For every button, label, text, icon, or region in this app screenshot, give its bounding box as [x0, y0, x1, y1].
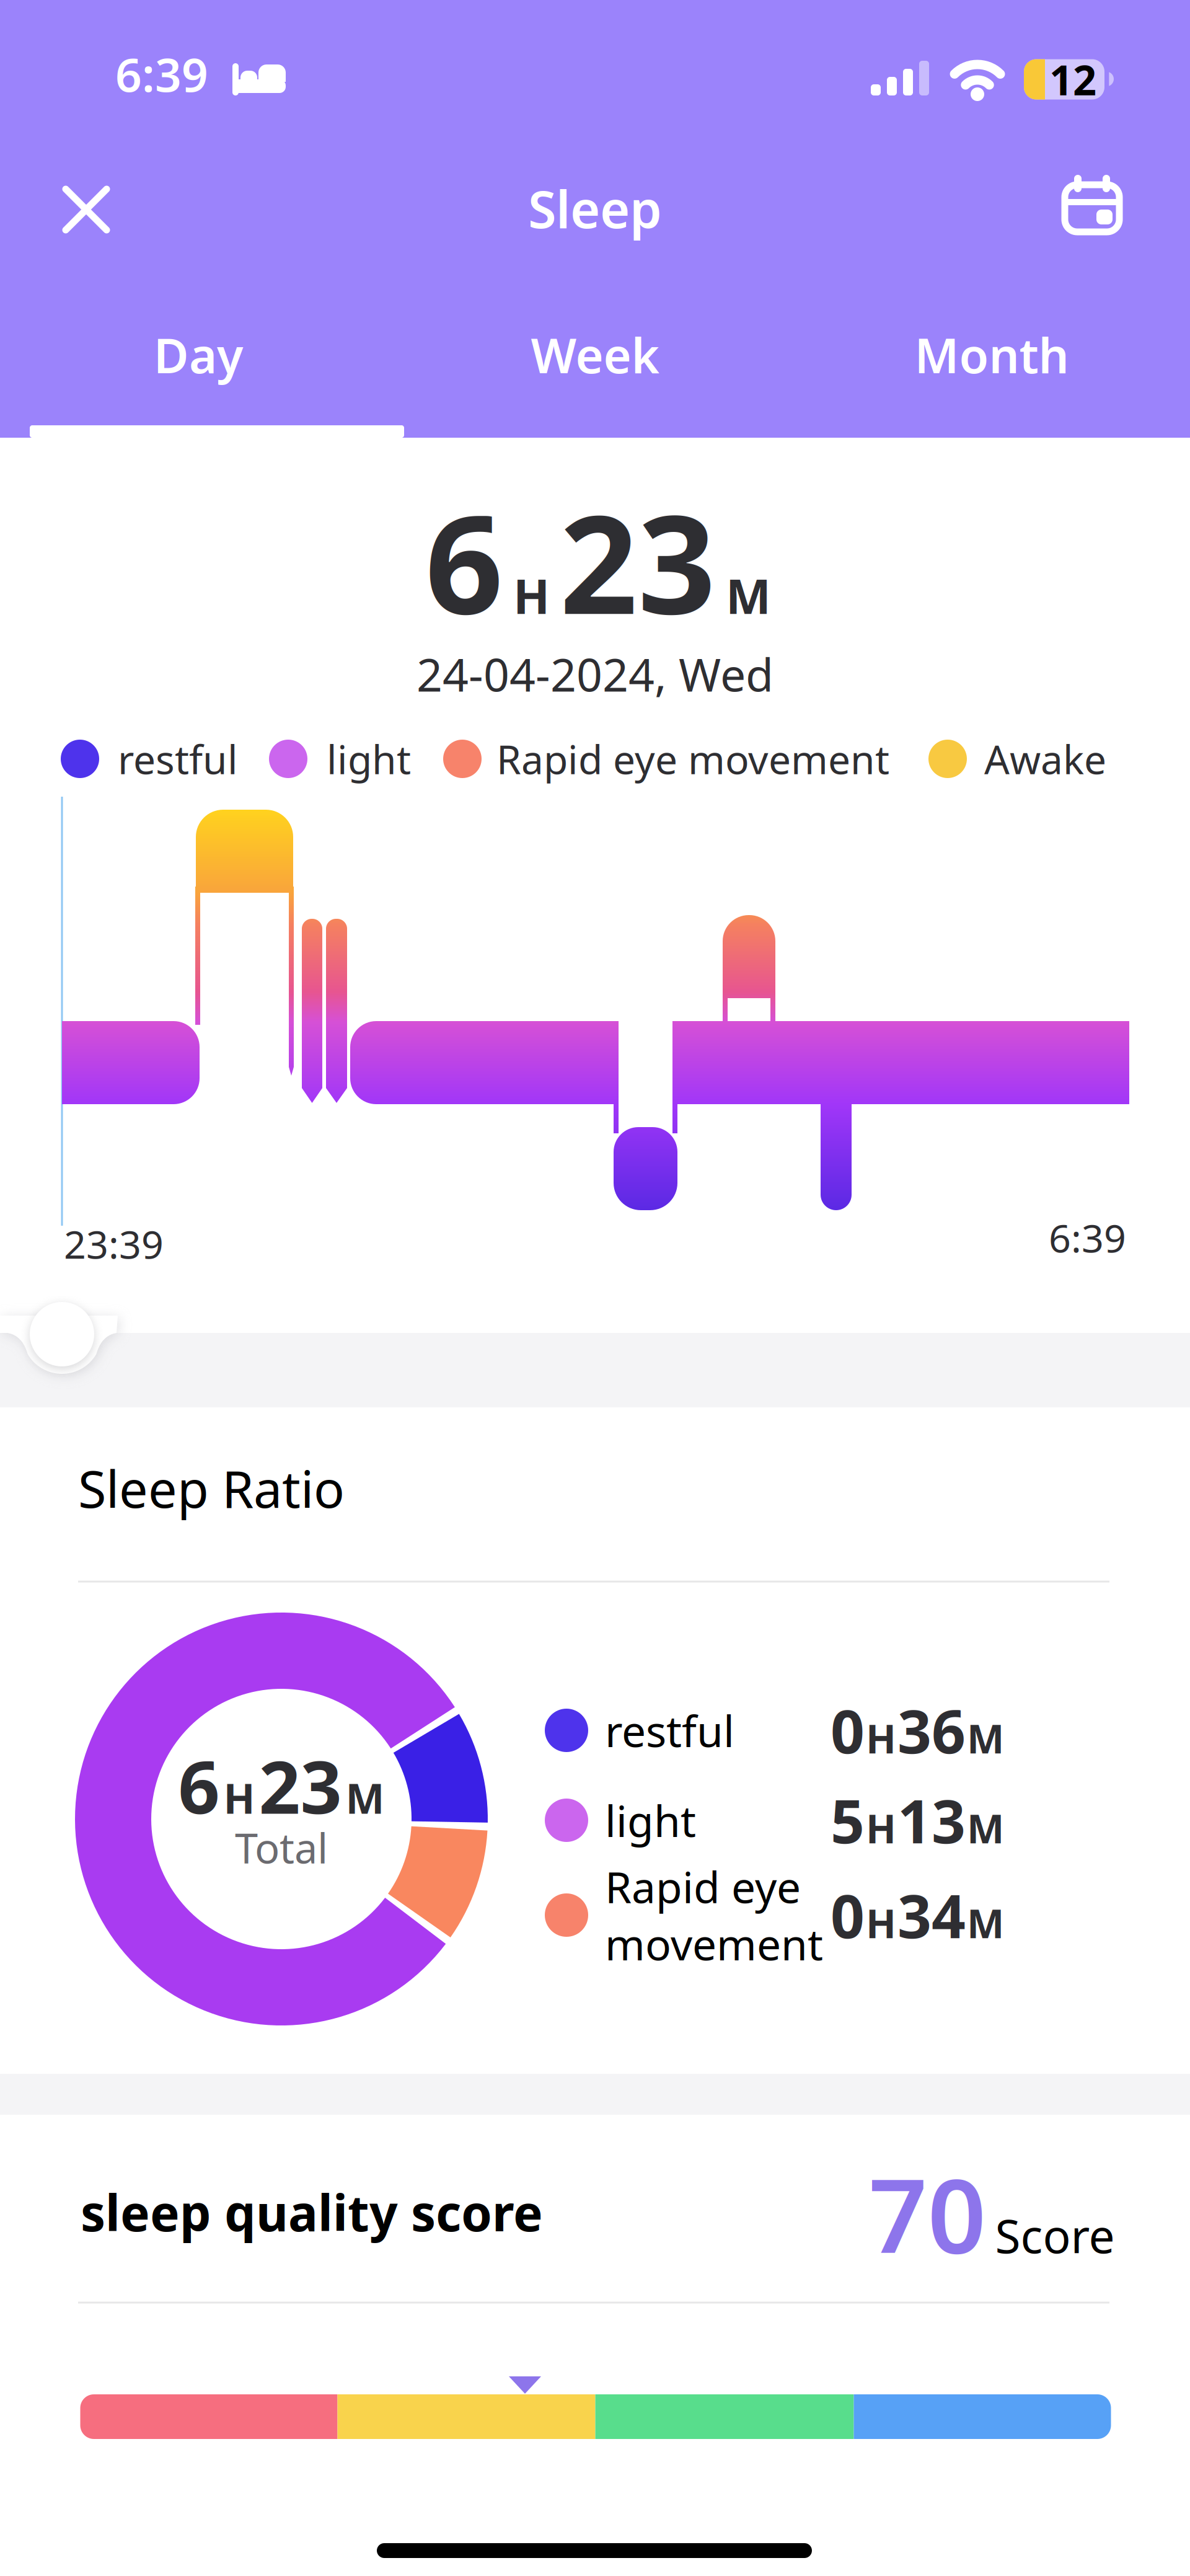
staticText: 24-04-2024, Wed	[416, 644, 773, 704]
staticText: 23	[259, 1737, 342, 1834]
staticText: 34	[897, 1876, 966, 1955]
staticText: movement	[605, 1915, 823, 1972]
button[interactable]: Week	[397, 317, 793, 392]
staticText: 13	[897, 1781, 966, 1860]
staticText: restful	[605, 1702, 734, 1759]
staticText: 5	[831, 1781, 865, 1860]
button[interactable]: Close	[55, 179, 117, 241]
staticText: Total	[235, 1820, 328, 1875]
staticText: Score	[995, 2204, 1115, 2266]
staticText: M	[967, 1802, 1004, 1854]
staticText: sleep quality score	[81, 2179, 543, 2245]
button[interactable]: Month	[793, 317, 1190, 392]
button[interactable]: Scrubber	[30, 1302, 94, 1366]
staticText: Awake	[984, 733, 1106, 785]
staticText: 6:39	[115, 43, 208, 105]
staticText: 36	[897, 1691, 966, 1770]
staticText: 70	[869, 2145, 986, 2281]
staticText: Sleep	[528, 174, 662, 242]
staticText: H	[866, 1802, 896, 1854]
staticText: Rapid eye	[605, 1858, 801, 1915]
staticText: 23:39	[64, 1218, 164, 1269]
button[interactable]: Home	[377, 2543, 812, 2558]
staticText: H	[223, 1770, 255, 1825]
staticText: Day	[154, 323, 243, 386]
staticText: 0	[831, 1691, 865, 1770]
staticText: light	[327, 733, 411, 785]
staticText: 6:39	[1049, 1212, 1126, 1263]
staticText: H	[866, 1712, 896, 1764]
staticText: H	[866, 1896, 896, 1949]
staticText: 6	[178, 1737, 220, 1834]
staticText: Week	[531, 323, 659, 386]
staticText: light	[605, 1792, 696, 1849]
staticText: 23	[560, 470, 716, 652]
staticText: M	[967, 1712, 1004, 1764]
staticText: M	[726, 564, 771, 627]
button[interactable]: Calendar	[1058, 172, 1126, 244]
staticText: M	[967, 1896, 1004, 1949]
button[interactable]: Day	[0, 317, 397, 392]
staticText: H	[513, 564, 550, 627]
staticText: Rapid eye movement	[496, 733, 889, 785]
staticText: 0	[831, 1876, 865, 1955]
staticText: restful	[118, 733, 238, 785]
staticText: 12	[1049, 52, 1096, 107]
staticText: Sleep Ratio	[78, 1454, 345, 1522]
staticText: Month	[915, 323, 1069, 386]
staticText: 6	[425, 470, 503, 652]
staticText: M	[346, 1770, 385, 1825]
